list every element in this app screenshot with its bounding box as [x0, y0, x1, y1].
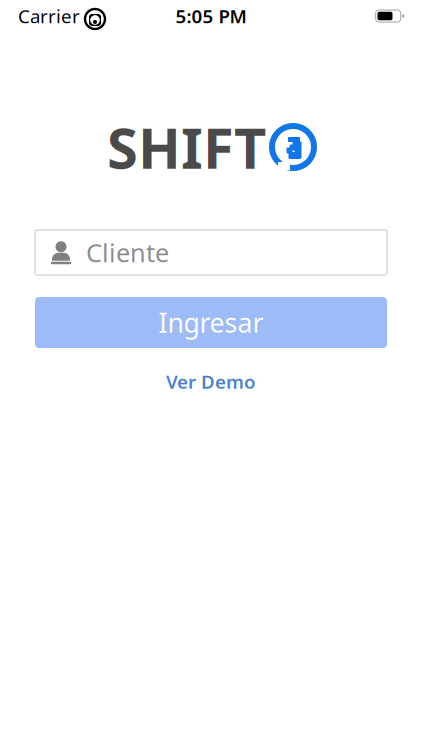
staticText: Ver Demo — [166, 369, 256, 394]
staticText: Carrier — [18, 4, 80, 28]
staticText: Cliente — [86, 236, 169, 269]
staticText: SHIFT — [107, 110, 266, 184]
button[interactable]: Ingresar — [35, 297, 387, 348]
staticText: 5:05 PM — [175, 4, 246, 28]
button[interactable]: Cliente — [35, 230, 387, 275]
staticText: Ingresar — [158, 305, 263, 340]
button[interactable]: Ver Demo — [156, 364, 266, 399]
